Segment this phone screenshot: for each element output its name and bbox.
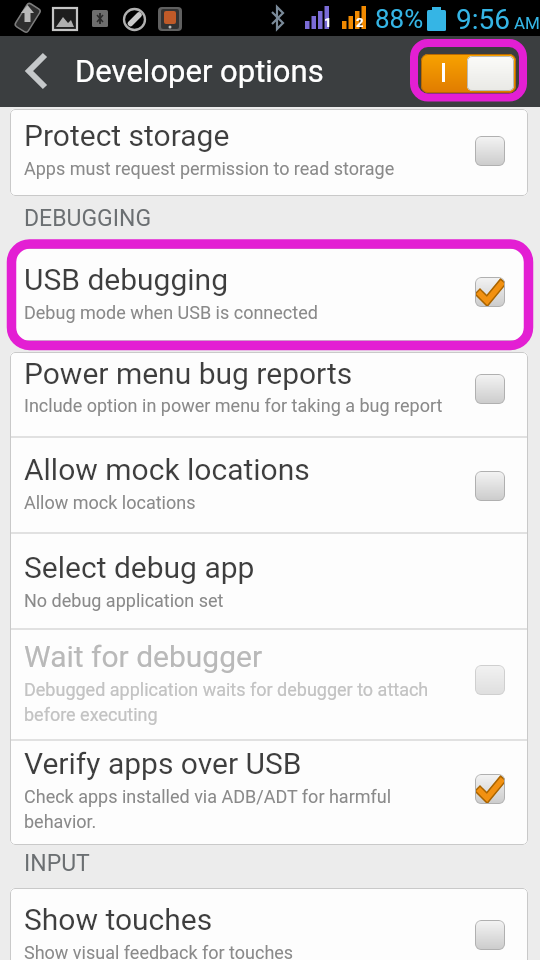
staticText: Allow mock locations: [24, 492, 196, 513]
button[interactable]: [475, 665, 505, 695]
staticText: Select debug app: [24, 550, 255, 585]
staticText: No debug application set: [24, 590, 224, 611]
button[interactable]: [14, 248, 526, 341]
button[interactable]: [10, 740, 528, 845]
staticText: Protect storage: [24, 118, 230, 153]
staticText: Allow mock locations: [24, 452, 310, 487]
button[interactable]: [475, 920, 505, 950]
button[interactable]: [10, 109, 528, 196]
button[interactable]: [10, 352, 528, 437]
staticText: Debug mode when USB is connected: [24, 302, 318, 323]
button[interactable]: [475, 774, 505, 804]
staticText: Developer options: [75, 53, 324, 89]
staticText: DEBUGGING: [24, 205, 152, 232]
staticText: Include option in power menu for taking …: [24, 395, 443, 416]
staticText: USB debugging: [24, 262, 229, 297]
button[interactable]: [475, 136, 505, 166]
button[interactable]: [475, 277, 505, 307]
staticText: 2: [356, 15, 364, 30]
staticText: Apps must request permission to read sto…: [24, 158, 395, 179]
staticText: Check apps installed via ADB/ADT for har…: [24, 786, 392, 832]
staticText: INPUT: [24, 850, 90, 877]
button[interactable]: [10, 533, 528, 629]
staticText: 1: [324, 15, 332, 30]
button[interactable]: [475, 374, 505, 404]
staticText: AM: [514, 13, 540, 33]
staticText: 9:56: [456, 3, 510, 36]
staticText: 88%: [375, 4, 424, 34]
button[interactable]: [421, 54, 516, 93]
button[interactable]: [475, 471, 505, 501]
staticText: Debugged application waits for debugger …: [24, 679, 429, 725]
button[interactable]: [10, 437, 528, 533]
staticText: Show visual feedback for touches: [24, 942, 294, 960]
staticText: Verify apps over USB: [24, 746, 302, 781]
staticText: Wait for debugger: [24, 639, 263, 674]
button[interactable]: [0, 36, 70, 107]
staticText: Power menu bug reports: [24, 356, 353, 391]
staticText: Show touches: [24, 902, 213, 937]
button[interactable]: [10, 888, 528, 960]
